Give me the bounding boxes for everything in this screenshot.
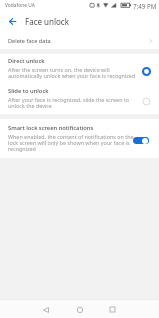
button[interactable]: Direct unlock [0,54,159,84]
staticText: Delete face data [8,37,51,45]
button[interactable]: Slide to unlock [0,84,159,114]
staticText: Direct unlock [8,57,45,65]
staticText: When enabled, the content of notificatio… [8,133,141,152]
staticText: After the screen turns on, the device wi… [8,66,141,79]
button[interactable]: Back [3,11,22,30]
staticText: Face unlock [25,16,69,27]
staticText: 7:49 PM [133,2,157,10]
button[interactable]: Back [28,299,64,318]
staticText: Smart lock screen notifications [8,124,94,132]
staticText: Vodafone UA [5,2,35,9]
button[interactable]: Recent apps [94,299,130,318]
button[interactable]: Delete face data [0,30,159,49]
button[interactable]: Home [62,299,98,318]
staticText: Slide to unlock [8,87,49,95]
staticText: After your face is recognized, slide the… [8,96,141,109]
button[interactable]: Smart lock screen notifications [0,119,159,158]
